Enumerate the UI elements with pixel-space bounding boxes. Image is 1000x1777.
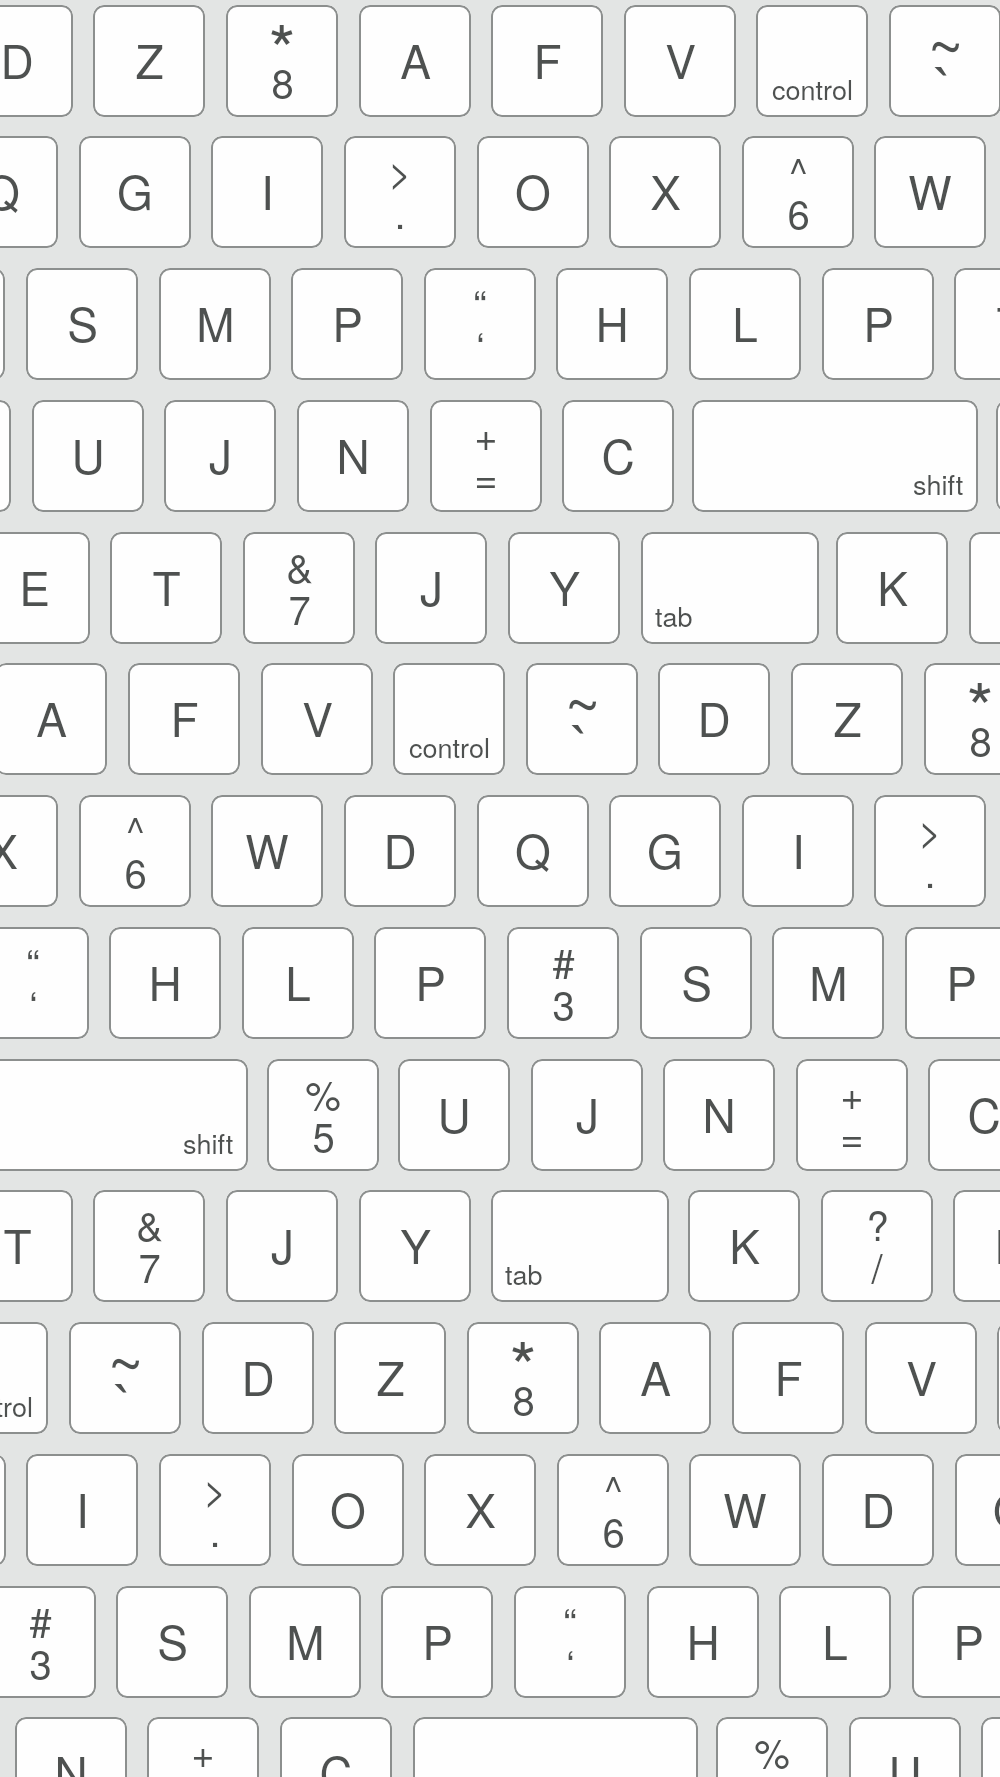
button[interactable]: Key tab xyxy=(491,1190,669,1302)
button[interactable]: Key C xyxy=(562,400,674,512)
button[interactable]: Key N xyxy=(297,400,409,512)
button[interactable]: Key D xyxy=(0,5,73,117)
button[interactable]: Key S xyxy=(640,927,752,1039)
button[interactable]: Key > . xyxy=(874,795,986,907)
button[interactable]: Key > . xyxy=(159,1454,271,1566)
button[interactable]: Key J xyxy=(981,1717,1000,1777)
button[interactable]: Key Z xyxy=(334,1322,446,1434)
button[interactable]: Key + = xyxy=(430,400,542,512)
button[interactable]: Key ~ ` xyxy=(526,663,638,775)
button[interactable]: Key A xyxy=(0,663,107,775)
button[interactable]: Key P xyxy=(822,268,934,380)
button[interactable]: Key P xyxy=(912,1586,1000,1698)
button[interactable]: Key H xyxy=(109,927,221,1039)
button[interactable]: Key “ ‘ xyxy=(424,268,536,380)
button[interactable]: Key M xyxy=(249,1586,361,1698)
button[interactable]: Key * 8 xyxy=(467,1322,579,1434)
button[interactable]: Key P xyxy=(0,268,5,380)
button[interactable]: Key > . xyxy=(344,136,456,248)
button[interactable]: Key Q xyxy=(955,1454,1000,1566)
button[interactable]: Key control xyxy=(0,1322,48,1434)
button[interactable]: Key Q xyxy=(0,136,58,248)
button[interactable]: Key T xyxy=(0,1190,73,1302)
button[interactable]: Key # 3 xyxy=(507,927,619,1039)
button[interactable]: Key H xyxy=(647,1586,759,1698)
button[interactable]: Key ? / xyxy=(821,1190,933,1302)
button[interactable]: Key tab xyxy=(641,532,819,644)
button[interactable]: Key ^ 6 xyxy=(742,136,854,248)
button[interactable]: Key Q xyxy=(477,795,589,907)
button[interactable]: Key shift xyxy=(692,400,978,512)
button[interactable]: Key Y xyxy=(359,1190,471,1302)
button[interactable]: Key L xyxy=(779,1586,891,1698)
button[interactable]: Key L xyxy=(689,268,801,380)
button[interactable]: Key T xyxy=(969,532,1000,644)
button[interactable]: Key X xyxy=(424,1454,536,1566)
button[interactable]: Key O xyxy=(0,400,11,512)
button[interactable]: Key G xyxy=(79,136,191,248)
button[interactable]: Key C xyxy=(280,1717,392,1777)
button[interactable]: Key V xyxy=(624,5,736,117)
button[interactable]: Key J xyxy=(164,400,276,512)
button[interactable]: Key shift xyxy=(0,1059,248,1171)
button[interactable]: Key S xyxy=(26,268,138,380)
button[interactable]: Key X xyxy=(0,795,58,907)
button[interactable]: Key W xyxy=(874,136,986,248)
button[interactable]: Key + = xyxy=(147,1717,259,1777)
button[interactable]: Key P xyxy=(291,268,403,380)
button[interactable]: Key % 5 xyxy=(716,1717,828,1777)
button[interactable]: Key Y xyxy=(508,532,620,644)
button[interactable]: Key & 7 xyxy=(243,532,355,644)
button[interactable]: Key K xyxy=(836,532,948,644)
button[interactable]: Key P xyxy=(374,927,486,1039)
button[interactable]: Key “ ‘ xyxy=(0,927,89,1039)
button[interactable]: Key Z xyxy=(93,5,205,117)
button[interactable]: Key U xyxy=(398,1059,510,1171)
button[interactable]: Key I xyxy=(26,1454,138,1566)
button[interactable]: Key J xyxy=(531,1059,643,1171)
button[interactable]: Key E xyxy=(0,532,90,644)
button[interactable]: Key P xyxy=(905,927,1000,1039)
button[interactable]: Key % 5 xyxy=(267,1059,379,1171)
button[interactable]: Key G xyxy=(609,795,721,907)
button[interactable]: Key A xyxy=(359,5,471,117)
button[interactable]: Key M xyxy=(772,927,884,1039)
button[interactable]: Key O xyxy=(477,136,589,248)
button[interactable]: Key N xyxy=(15,1717,127,1777)
button[interactable]: Key M xyxy=(159,268,271,380)
button[interactable]: Key control xyxy=(756,5,868,117)
button[interactable]: Key I xyxy=(211,136,323,248)
button[interactable]: Key X xyxy=(609,136,721,248)
button[interactable]: Key # 3 xyxy=(0,1586,96,1698)
button[interactable]: Key L xyxy=(242,927,354,1039)
button[interactable]: Key D xyxy=(344,795,456,907)
button[interactable]: Key T xyxy=(954,268,1000,380)
button[interactable]: Key W xyxy=(689,1454,801,1566)
button[interactable]: Key F xyxy=(732,1322,844,1434)
button[interactable]: Key V xyxy=(865,1322,977,1434)
button[interactable]: Key C xyxy=(928,1059,1000,1171)
button[interactable]: Key ^ 6 xyxy=(557,1454,669,1566)
button[interactable]: Key * 8 xyxy=(226,5,338,117)
button[interactable]: Key E xyxy=(953,1190,1000,1302)
button[interactable]: Key shift xyxy=(413,1717,698,1777)
button[interactable]: Key A xyxy=(599,1322,711,1434)
button[interactable]: Key I xyxy=(742,795,854,907)
button[interactable]: Key “ ‘ xyxy=(514,1586,626,1698)
button[interactable]: Key D xyxy=(202,1322,314,1434)
button[interactable]: Key + = xyxy=(796,1059,908,1171)
button[interactable]: Key S xyxy=(116,1586,228,1698)
button[interactable]: Key ~ ` xyxy=(889,5,1000,117)
button[interactable]: Key Q xyxy=(0,1454,6,1566)
button[interactable]: Key * 8 xyxy=(924,663,1000,775)
button[interactable]: Key P xyxy=(381,1586,493,1698)
button[interactable]: Key V xyxy=(261,663,373,775)
button[interactable]: Key F xyxy=(128,663,240,775)
button[interactable]: Key D xyxy=(658,663,770,775)
button[interactable]: Key N xyxy=(663,1059,775,1171)
button[interactable]: Key J xyxy=(226,1190,338,1302)
button[interactable]: Key Q xyxy=(997,1322,1000,1434)
button[interactable]: Key & 7 xyxy=(93,1190,205,1302)
button[interactable]: Key D xyxy=(822,1454,934,1566)
button[interactable]: Key W xyxy=(211,795,323,907)
